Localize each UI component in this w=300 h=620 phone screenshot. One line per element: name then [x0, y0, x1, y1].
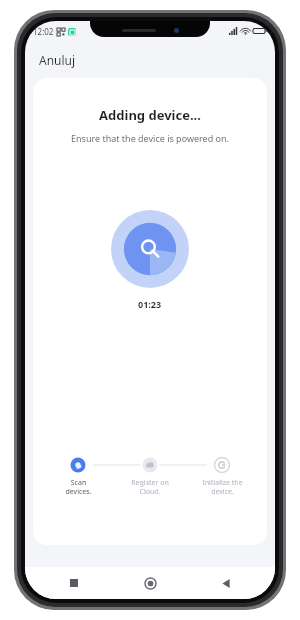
staticText: Register on Cloud. — [131, 478, 169, 496]
button[interactable]: Register on Cloud step — [119, 457, 181, 496]
button[interactable]: Anuluj — [25, 45, 275, 75]
button[interactable]: Recents — [61, 570, 87, 596]
staticText: 01:23 — [138, 298, 162, 310]
staticText: 12:02 — [33, 26, 54, 37]
button[interactable]: Initialize the device step — [191, 457, 253, 496]
other: Scan devices step — [70, 457, 86, 473]
button[interactable]: Home — [137, 570, 163, 596]
button[interactable]: Back — [213, 570, 239, 596]
other: Initialize the device step — [214, 457, 230, 473]
staticText: Scan devices. — [65, 478, 92, 496]
staticText: Initialize the device. — [202, 478, 243, 496]
button[interactable]: Scan devices step — [47, 457, 109, 496]
staticText: Ensure that the device is powered on. — [71, 132, 229, 144]
other: Register on Cloud step — [142, 457, 158, 473]
staticText: Adding device... — [99, 106, 201, 124]
staticText: Anuluj — [39, 52, 76, 68]
